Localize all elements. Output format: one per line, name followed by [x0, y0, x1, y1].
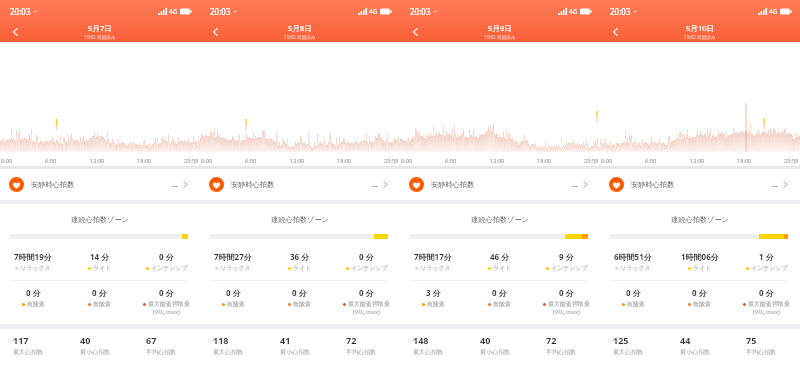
button[interactable]: 1 分: [733, 251, 800, 272]
staticText: 23:59: [584, 157, 599, 165]
button[interactable]: Back: [4, 21, 26, 42]
button[interactable]: 118: [213, 334, 273, 356]
button[interactable]: 36 分: [266, 251, 333, 272]
button[interactable]: Back: [404, 21, 426, 42]
staticText: 14 分: [90, 251, 110, 262]
button[interactable]: 0 分: [0, 287, 66, 308]
staticText: 平均心拍数: [346, 348, 376, 356]
button[interactable]: 0 分: [333, 287, 400, 316]
staticText: 連続心拍数ゾーン: [600, 215, 800, 224]
staticText: 6:00: [45, 157, 57, 165]
button[interactable]: 40: [480, 334, 540, 356]
button[interactable]: 40: [80, 334, 140, 356]
staticText: 18:00: [137, 157, 152, 165]
button[interactable]: 0 分: [666, 287, 733, 308]
button[interactable]: 72: [346, 334, 406, 356]
button[interactable]: 1時間06分: [666, 251, 733, 272]
button[interactable]: Back: [604, 21, 626, 42]
button[interactable]: 0 分: [333, 251, 400, 272]
staticText: 4G: [769, 7, 778, 16]
staticText: インテンシブ: [351, 264, 388, 272]
staticText: 5月7日: [88, 23, 112, 33]
staticText: 最小心拍数: [280, 348, 310, 356]
button[interactable]: 安静時心拍数: [400, 169, 600, 200]
staticText: 0 分: [759, 287, 774, 298]
button[interactable]: 67: [146, 334, 206, 356]
staticText: 72: [346, 334, 357, 346]
staticText: 0 分: [692, 287, 707, 298]
staticText: 6:00: [245, 157, 257, 165]
staticText: 7時間27分: [214, 251, 252, 262]
staticText: リラックス: [20, 264, 51, 272]
staticText: 118: [213, 334, 229, 346]
staticText: 40: [80, 334, 91, 346]
staticText: 36 分: [290, 251, 310, 262]
staticText: 連続心拍数ゾーン: [400, 215, 600, 224]
staticText: 12:00: [90, 157, 105, 165]
staticText: 40: [480, 334, 491, 346]
staticText: 安静時心拍数: [31, 180, 75, 189]
button[interactable]: 41: [280, 334, 340, 356]
button[interactable]: 3 分: [400, 287, 466, 308]
button[interactable]: 0 分: [600, 287, 666, 308]
button[interactable]: 0 分: [733, 287, 800, 316]
button[interactable]: 0 分: [533, 287, 600, 316]
button[interactable]: 75: [746, 334, 800, 356]
staticText: 12:00: [690, 157, 705, 165]
button[interactable]: 46 分: [466, 251, 533, 272]
staticText: 平均心拍数: [146, 348, 176, 356]
button[interactable]: 9 分: [533, 251, 600, 272]
button[interactable]: 117: [13, 334, 73, 356]
staticText: 安静時心拍数: [231, 180, 275, 189]
staticText: 46 分: [490, 251, 510, 262]
button[interactable]: 0 分: [466, 287, 533, 308]
staticText: 有酸素: [227, 300, 245, 308]
staticText: 0:00: [1, 157, 13, 165]
button[interactable]: 125: [613, 334, 673, 356]
button[interactable]: Back: [204, 21, 226, 42]
staticText: 1 分: [759, 251, 774, 262]
staticText: 18:00: [537, 157, 552, 165]
staticText: 最大心拍数: [13, 348, 43, 356]
button[interactable]: 148: [413, 334, 473, 356]
staticText: 有酸素: [27, 300, 45, 308]
button[interactable]: 安静時心拍数: [600, 169, 800, 200]
button[interactable]: 0 分: [66, 287, 133, 308]
staticText: 最大心拍数: [613, 348, 643, 356]
staticText: 最小心拍数: [80, 348, 110, 356]
staticText: ライト: [293, 264, 312, 272]
button[interactable]: 7時間27分: [200, 251, 266, 272]
staticText: リラックス: [420, 264, 451, 272]
button[interactable]: 0 分: [200, 287, 266, 308]
staticText: 0 分: [92, 287, 107, 298]
staticText: 無酸素: [693, 300, 711, 308]
staticText: 20:03: [410, 6, 431, 17]
staticText: 最小心拍数: [680, 348, 710, 356]
staticText: 0 分: [359, 287, 374, 298]
button[interactable]: 6時間51分: [600, 251, 666, 272]
button[interactable]: 0 分: [133, 287, 200, 316]
staticText: 安静時心拍数: [431, 180, 475, 189]
button[interactable]: 72: [546, 334, 606, 356]
staticText: 最大酸素摂取量: [748, 300, 790, 308]
staticText: (VO₂ max): [153, 308, 180, 316]
button[interactable]: 安静時心拍数: [0, 169, 200, 200]
staticText: インテンシブ: [151, 264, 188, 272]
button[interactable]: 0 分: [266, 287, 333, 308]
staticText: 安静時心拍数: [631, 180, 675, 189]
staticText: 有酸素: [627, 300, 645, 308]
button[interactable]: 14 分: [66, 251, 133, 272]
staticText: 0:00: [601, 157, 613, 165]
staticText: 0 分: [159, 251, 174, 262]
button[interactable]: 安静時心拍数: [200, 169, 400, 200]
staticText: 3 分: [426, 287, 441, 298]
button[interactable]: 44: [680, 334, 740, 356]
button[interactable]: 0 分: [133, 251, 200, 272]
staticText: 6:00: [645, 157, 657, 165]
button[interactable]: 7時間19分: [0, 251, 66, 272]
staticText: 10:02 同期済み: [84, 34, 116, 40]
staticText: 0 分: [559, 287, 574, 298]
button[interactable]: 7時間17分: [400, 251, 466, 272]
staticText: 0 分: [492, 287, 507, 298]
staticText: 148: [413, 334, 429, 346]
